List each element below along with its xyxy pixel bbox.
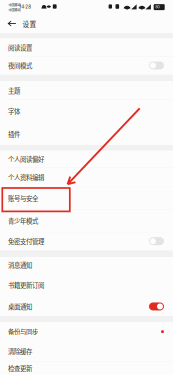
button[interactable]: 青少年模式 [0, 209, 173, 232]
staticText: 夜间模式 [8, 61, 32, 70]
staticText: 字体 [8, 107, 20, 116]
button[interactable]: 免密支付管理 [0, 232, 173, 250]
staticText: 14:28 [19, 4, 31, 9]
staticText: 书籍更新订阅 [8, 280, 44, 290]
staticText: 中国移动 [9, 3, 21, 7]
staticText: 备份与同步 [8, 327, 38, 336]
button[interactable]: 个人资料编辑 [0, 167, 173, 187]
button[interactable]: 桌面通知 [0, 297, 173, 316]
button[interactable]: 账号与安全 [0, 187, 173, 209]
staticText: 青少年模式 [8, 216, 38, 225]
button[interactable]: 检查更新 [0, 361, 173, 375]
staticText: 设置 [22, 19, 36, 29]
button[interactable]: 清除缓存 [0, 341, 173, 361]
button[interactable]: 插件 [0, 123, 173, 145]
staticText: 桌面通知 [8, 302, 32, 311]
button[interactable]: 字体 [0, 99, 173, 123]
staticText: 账号与安全 [8, 193, 38, 203]
button[interactable]: 消息通知 [0, 257, 173, 273]
button[interactable]: 主题 [0, 81, 173, 99]
staticText: 个人资料编辑 [8, 172, 44, 182]
button[interactable]: 夜间模式 [0, 56, 173, 74]
button[interactable]: 阅读设置 [0, 38, 173, 56]
staticText: 个人阅读偏好 [8, 154, 44, 164]
staticText: 清除缓存 [8, 347, 32, 356]
button[interactable]: 个人阅读偏好 [0, 151, 173, 167]
staticText: 80 [155, 4, 160, 9]
staticText: 阅读设置 [8, 43, 32, 52]
staticText: 插件 [8, 129, 20, 139]
button[interactable]: 书籍更新订阅 [0, 273, 173, 297]
staticText: 主题 [8, 86, 20, 95]
staticText: 免密支付管理 [8, 237, 44, 246]
button[interactable]: Back [4, 14, 20, 33]
staticText: 中国移动 [9, 8, 21, 12]
staticText: 检查更新 [8, 364, 32, 373]
button[interactable]: 备份与同步 [0, 322, 173, 341]
staticText: 消息通知 [8, 260, 32, 270]
